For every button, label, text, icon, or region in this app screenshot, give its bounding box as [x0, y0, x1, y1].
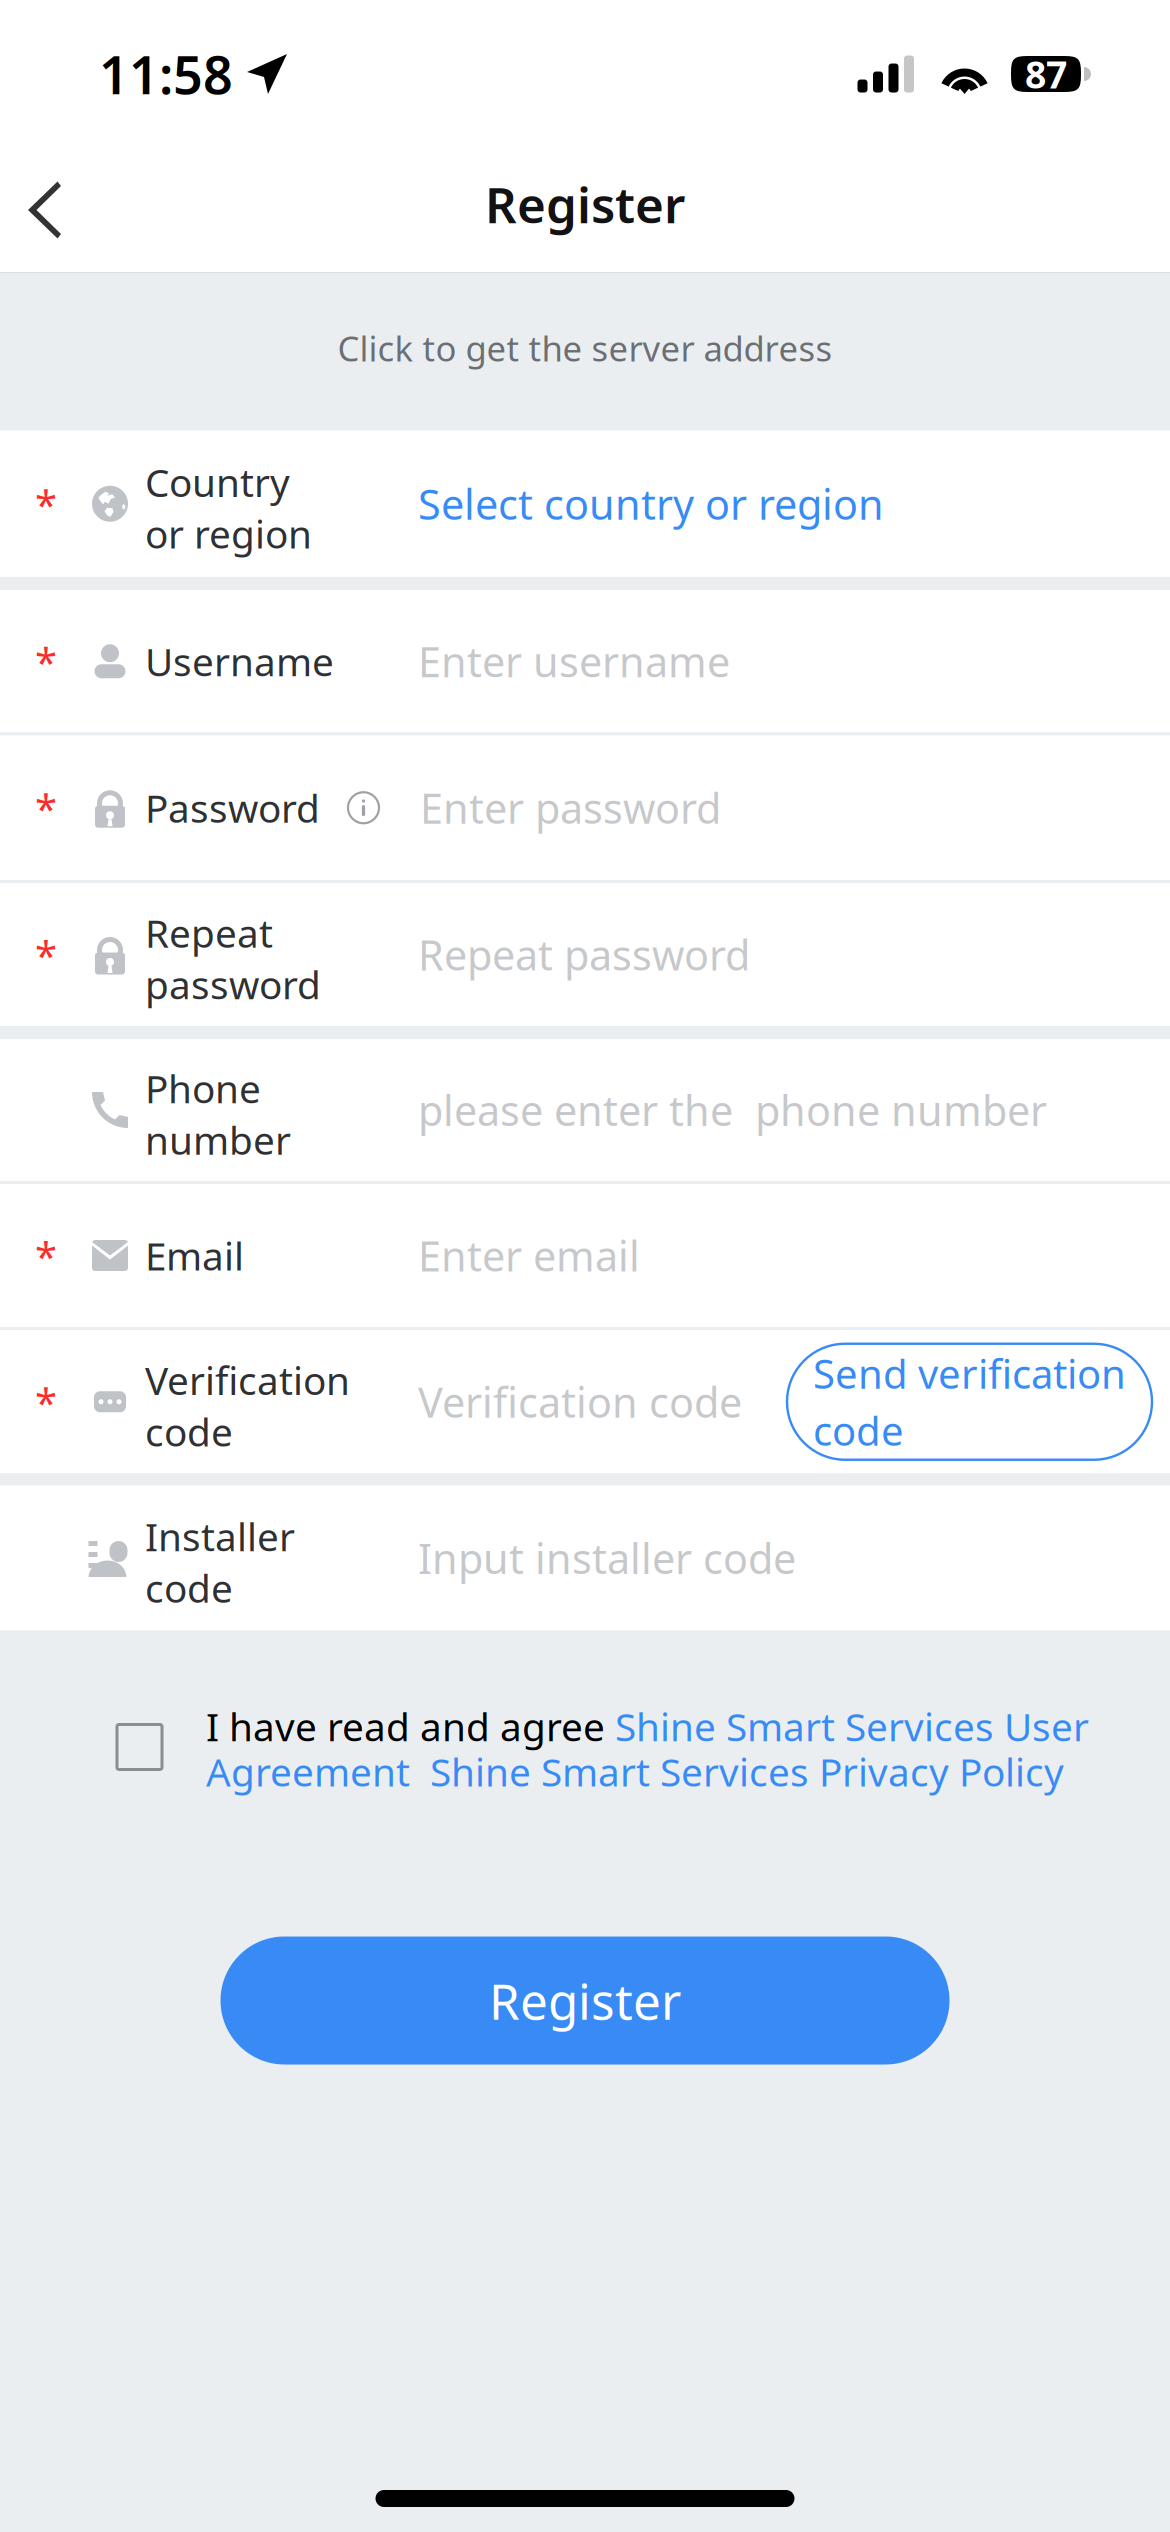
button[interactable]: * — [0, 735, 1170, 880]
staticText: Register — [485, 171, 685, 237]
button[interactable]: Agree to terms — [117, 1724, 162, 1769]
button[interactable]: * — [0, 590, 1170, 732]
staticText: number — [145, 1114, 291, 1165]
button[interactable]: Shine Smart Services Privacy Policy — [430, 1746, 1064, 1797]
button[interactable]: * — [0, 430, 1170, 577]
staticText: 11:58 — [99, 39, 233, 109]
staticText: Repeat — [145, 907, 273, 958]
button[interactable]: Send verification — [787, 1344, 1152, 1460]
staticText: Email — [145, 1230, 244, 1281]
button[interactable]: Password info — [347, 791, 380, 824]
staticText: password — [145, 958, 321, 1010]
staticText: Verification — [145, 1354, 350, 1406]
button[interactable]: Shine Smart Services User — [615, 1700, 1089, 1752]
button[interactable]: Select country or region — [418, 476, 884, 531]
staticText: Installer — [145, 1511, 295, 1562]
staticText: 87 — [1025, 49, 1067, 99]
button[interactable]: Register — [220, 1936, 949, 2064]
staticText: Register — [489, 1968, 681, 2033]
button[interactable]: * — [0, 1184, 1170, 1327]
staticText: Select country or region — [418, 476, 884, 531]
staticText: Click to get the server address — [337, 325, 832, 371]
staticText: * — [35, 928, 57, 981]
staticText: or region — [145, 508, 312, 559]
staticText: * — [35, 635, 57, 688]
staticText: code — [813, 1404, 904, 1457]
staticText: Country — [145, 456, 290, 508]
button[interactable] — [0, 1039, 1170, 1181]
staticText: Verification code — [418, 1374, 742, 1429]
staticText: * — [35, 477, 57, 530]
button[interactable]: * — [0, 883, 1170, 1026]
staticText: Input installer code — [418, 1531, 796, 1585]
staticText: Enter password — [420, 780, 721, 835]
staticText: Enter username — [418, 634, 730, 689]
staticText: Shine Smart Services User — [615, 1700, 1089, 1752]
staticText: code — [145, 1406, 233, 1457]
button[interactable] — [0, 1485, 1170, 1630]
staticText: * — [35, 781, 57, 834]
staticText: Shine Smart Services Privacy Policy — [430, 1746, 1064, 1797]
button[interactable]: Back — [0, 149, 95, 270]
staticText: please enter the phone number — [418, 1083, 1047, 1137]
button[interactable]: Agreement — [206, 1746, 410, 1797]
staticText: I have read and agree — [206, 1700, 615, 1752]
staticText: Repeat password — [418, 927, 750, 982]
staticText: Enter email — [418, 1228, 640, 1283]
staticText: * — [35, 1375, 57, 1428]
staticText: Phone — [145, 1063, 261, 1114]
button[interactable]: Click to get the server address — [0, 273, 1170, 430]
staticText: code — [145, 1562, 233, 1613]
staticText: Agreement — [206, 1746, 410, 1797]
staticText: Password — [145, 782, 320, 833]
staticText: Username — [145, 636, 334, 687]
staticText: * — [35, 1229, 57, 1282]
staticText: Send verification — [813, 1347, 1126, 1400]
